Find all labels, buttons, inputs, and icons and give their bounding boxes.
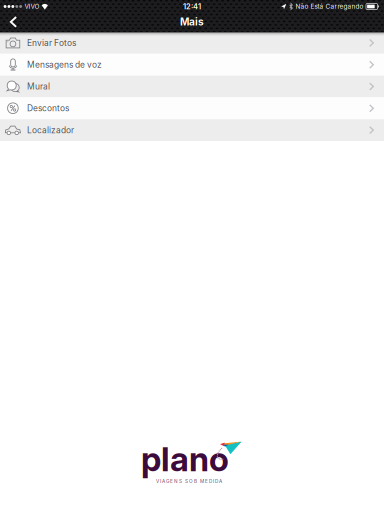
staticText: Mural: [27, 81, 50, 92]
button[interactable]: Voltar: [0, 13, 24, 31]
staticText: Mais: [180, 16, 204, 28]
button[interactable]: Mural: [0, 76, 384, 97]
button[interactable]: Descontos: [0, 97, 384, 119]
staticText: Enviar Fotos: [27, 38, 76, 48]
staticText: Mensagens de voz: [27, 60, 102, 70]
staticText: Localizador: [27, 125, 74, 135]
staticText: VIVO: [24, 3, 39, 10]
staticText: Descontos: [27, 103, 69, 113]
staticText: Não Está Carregando: [295, 3, 363, 10]
staticText: 12:41: [183, 2, 201, 11]
button[interactable]: Enviar Fotos: [0, 32, 384, 54]
staticText: plano: [141, 439, 229, 479]
button[interactable]: Mensagens de voz: [0, 54, 384, 76]
staticText: V I A G E N S S O B M E D I D A: [156, 478, 222, 484]
button[interactable]: Localizador: [0, 119, 384, 141]
